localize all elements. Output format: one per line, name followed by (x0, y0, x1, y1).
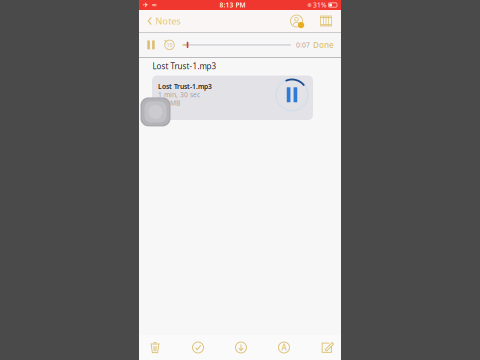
button[interactable]: Add table (316, 10, 336, 32)
staticText: ⊛ (307, 2, 311, 8)
staticText: 15 (166, 41, 172, 48)
staticText: 0:07 (296, 40, 310, 49)
button[interactable]: Pause (141, 32, 160, 57)
button[interactable]: Checklist (185, 335, 211, 360)
button[interactable]: Delete (142, 335, 168, 360)
staticText: Lost Trust-1.mp3 (152, 61, 216, 71)
button[interactable]: Notes (139, 10, 185, 32)
staticText: 8:13 PM (219, 1, 245, 9)
button[interactable]: Done (312, 32, 335, 57)
staticText: 3.2 MB (158, 99, 180, 107)
staticText: ≈ (151, 1, 157, 9)
staticText: 31% (313, 1, 327, 9)
button[interactable]: Attach (228, 335, 254, 360)
staticText: ✈ (143, 1, 149, 9)
button[interactable]: Format (271, 335, 297, 360)
button[interactable]: Skip back 15 seconds (160, 32, 178, 57)
staticText: Lost Trust-1.mp3 (158, 82, 212, 91)
button[interactable]: Collaborate (286, 10, 307, 32)
button[interactable]: New note (314, 335, 340, 360)
staticText: 1 min, 30 sec (158, 90, 200, 99)
staticText: Notes (155, 15, 180, 27)
staticText: A (281, 342, 286, 353)
staticText: Done (313, 40, 334, 50)
